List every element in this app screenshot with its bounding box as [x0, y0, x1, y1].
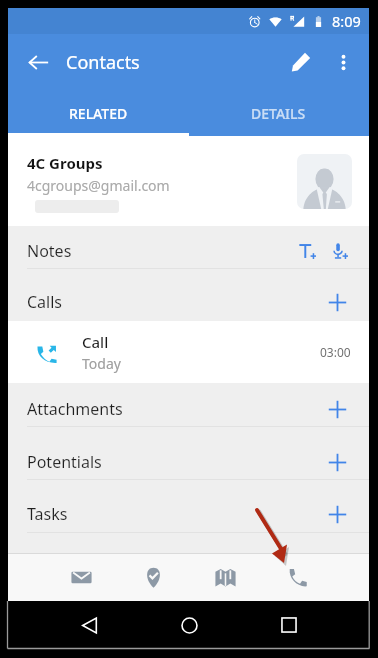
button[interactable]: Add Potentials	[322, 447, 352, 477]
button[interactable]: Call	[261, 554, 333, 601]
staticText: 03:00	[320, 344, 351, 360]
button[interactable]: Tasks	[8, 480, 369, 532]
button[interactable]: Attachments	[8, 383, 369, 426]
button[interactable]: More options	[323, 42, 363, 82]
button[interactable]: Edit	[279, 40, 323, 84]
staticText: RELATED	[69, 104, 128, 123]
staticText: Tasks	[27, 503, 68, 525]
staticText: Notes	[27, 240, 72, 262]
staticText: Attachments	[27, 398, 123, 420]
staticText: Potentials	[27, 451, 102, 473]
button[interactable]: Check in	[117, 554, 189, 601]
staticText: Today	[82, 354, 121, 373]
button[interactable]: RELATED	[8, 90, 188, 136]
staticText: Call	[82, 332, 109, 352]
button[interactable]: Email	[45, 554, 117, 601]
button[interactable]: Home	[169, 605, 209, 645]
staticText: Calls	[27, 291, 63, 313]
staticText: 4C Groups	[27, 153, 103, 173]
button[interactable]: Add voice note	[323, 235, 355, 267]
staticText: 4cgroups@gmail.com	[27, 176, 170, 195]
button[interactable]: Add Tasks	[322, 499, 352, 529]
button[interactable]: Add Attachments	[322, 394, 352, 424]
button[interactable]: Recents	[269, 605, 309, 645]
button[interactable]: Contact photo	[297, 154, 352, 209]
staticText: DETAILS	[251, 104, 306, 123]
button[interactable]: Call	[8, 321, 369, 383]
button[interactable]: Back	[69, 605, 109, 645]
button[interactable]: Add Calls	[322, 287, 352, 317]
button[interactable]: Add text note	[291, 235, 323, 267]
staticText: Contacts	[66, 50, 140, 75]
button[interactable]: Notes	[8, 226, 369, 268]
button[interactable]: Potentials	[8, 427, 369, 479]
button[interactable]: Back	[17, 41, 59, 83]
staticText: 8:09	[332, 11, 361, 31]
button[interactable]: Calls	[8, 269, 369, 321]
button[interactable]: DETAILS	[188, 90, 369, 136]
button[interactable]: Map	[189, 554, 261, 601]
